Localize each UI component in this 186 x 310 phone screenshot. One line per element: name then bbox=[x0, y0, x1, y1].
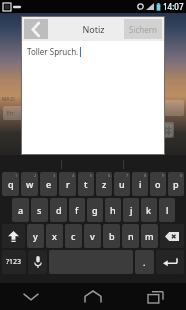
staticText: 0 bbox=[180, 173, 183, 178]
staticText: ?123 bbox=[6, 257, 22, 267]
staticText: 16:57 bbox=[152, 90, 165, 97]
staticText: h bbox=[110, 204, 116, 216]
staticText: s bbox=[37, 204, 42, 216]
staticText: Err bbox=[7, 110, 14, 117]
staticText: p bbox=[173, 178, 179, 190]
staticText: u bbox=[119, 178, 125, 190]
button[interactable]: f bbox=[69, 198, 85, 222]
button[interactable]: Umschalt bbox=[2, 224, 25, 248]
staticText: 1 bbox=[15, 173, 18, 178]
staticText: z bbox=[102, 178, 107, 190]
staticText: 14:07 bbox=[163, 1, 184, 12]
button[interactable]: Eingabe bbox=[156, 250, 184, 274]
staticText: 4 bbox=[72, 173, 75, 178]
staticText: 6 bbox=[108, 173, 111, 178]
button[interactable]: v bbox=[84, 224, 101, 248]
button[interactable]: 2 bbox=[21, 172, 38, 196]
button[interactable]: j bbox=[123, 198, 139, 222]
button[interactable]: ?123 bbox=[2, 250, 26, 274]
staticText: 7 bbox=[126, 173, 129, 178]
button[interactable]: h bbox=[105, 198, 121, 222]
staticText: x bbox=[52, 230, 57, 242]
staticText: i bbox=[139, 178, 142, 190]
button[interactable]: 6 bbox=[96, 172, 112, 196]
button[interactable]: n bbox=[122, 224, 139, 248]
button[interactable]: x bbox=[46, 224, 63, 248]
staticText: b bbox=[109, 230, 115, 242]
staticText: n bbox=[128, 230, 134, 242]
staticText: y bbox=[33, 230, 38, 242]
button[interactable]: 5 bbox=[78, 172, 94, 196]
staticText: m bbox=[145, 230, 154, 242]
staticText: w bbox=[26, 178, 34, 190]
button[interactable]: Sichern bbox=[124, 19, 162, 39]
staticText: c bbox=[71, 230, 76, 242]
button[interactable]: y bbox=[27, 224, 44, 248]
staticText: e bbox=[46, 178, 52, 190]
button[interactable]: Zurück bbox=[24, 19, 48, 39]
button[interactable]: k bbox=[141, 198, 157, 222]
staticText: g bbox=[92, 204, 98, 216]
button[interactable]: 9 bbox=[150, 172, 166, 196]
button[interactable]: . bbox=[135, 250, 154, 274]
button[interactable]: Toller Spruch. bbox=[22, 41, 164, 154]
staticText: k bbox=[146, 204, 152, 216]
staticText: 2 bbox=[34, 173, 37, 178]
staticText: MA.O bbox=[2, 96, 15, 103]
button[interactable]: Löschen bbox=[160, 224, 184, 248]
staticText: o bbox=[155, 178, 161, 190]
staticText: Sichern bbox=[129, 24, 157, 35]
staticText: a bbox=[18, 204, 24, 216]
button[interactable]: Spracheingabe bbox=[28, 250, 47, 274]
staticText: l bbox=[166, 204, 169, 216]
button[interactable]: Zuletzt verwendet bbox=[124, 283, 186, 310]
button[interactable]: a bbox=[12, 198, 29, 222]
staticText: . bbox=[143, 256, 146, 268]
button[interactable]: 3 bbox=[40, 172, 57, 196]
staticText: Notiz bbox=[82, 23, 105, 35]
button[interactable]: 1 bbox=[2, 172, 19, 196]
button[interactable]: 7 bbox=[114, 172, 130, 196]
button[interactable]: Tastatur ausblenden bbox=[0, 283, 62, 310]
staticText: j bbox=[130, 204, 133, 216]
button[interactable]: 8 bbox=[132, 172, 148, 196]
staticText: Toller Spruch. bbox=[27, 46, 79, 57]
staticText: 5 bbox=[90, 173, 93, 178]
button[interactable]: Startbildschirm bbox=[62, 283, 124, 310]
button[interactable]: 4 bbox=[59, 172, 76, 196]
staticText: r bbox=[66, 178, 70, 190]
button[interactable]: g bbox=[87, 198, 103, 222]
staticText: 3 bbox=[53, 173, 56, 178]
staticText: v bbox=[90, 230, 95, 242]
button[interactable]: s bbox=[31, 198, 48, 222]
staticText: f bbox=[75, 204, 79, 216]
staticText: t bbox=[84, 178, 88, 190]
staticText: d bbox=[56, 204, 62, 216]
button[interactable]: d bbox=[50, 198, 67, 222]
staticText: 9 bbox=[162, 173, 165, 178]
button[interactable]: c bbox=[65, 224, 82, 248]
button[interactable]: m bbox=[141, 224, 158, 248]
staticText: q bbox=[8, 178, 14, 190]
button[interactable]: l bbox=[159, 198, 175, 222]
staticText: 8 bbox=[144, 173, 147, 178]
button[interactable]: 0 bbox=[168, 172, 184, 196]
button[interactable]: b bbox=[103, 224, 120, 248]
